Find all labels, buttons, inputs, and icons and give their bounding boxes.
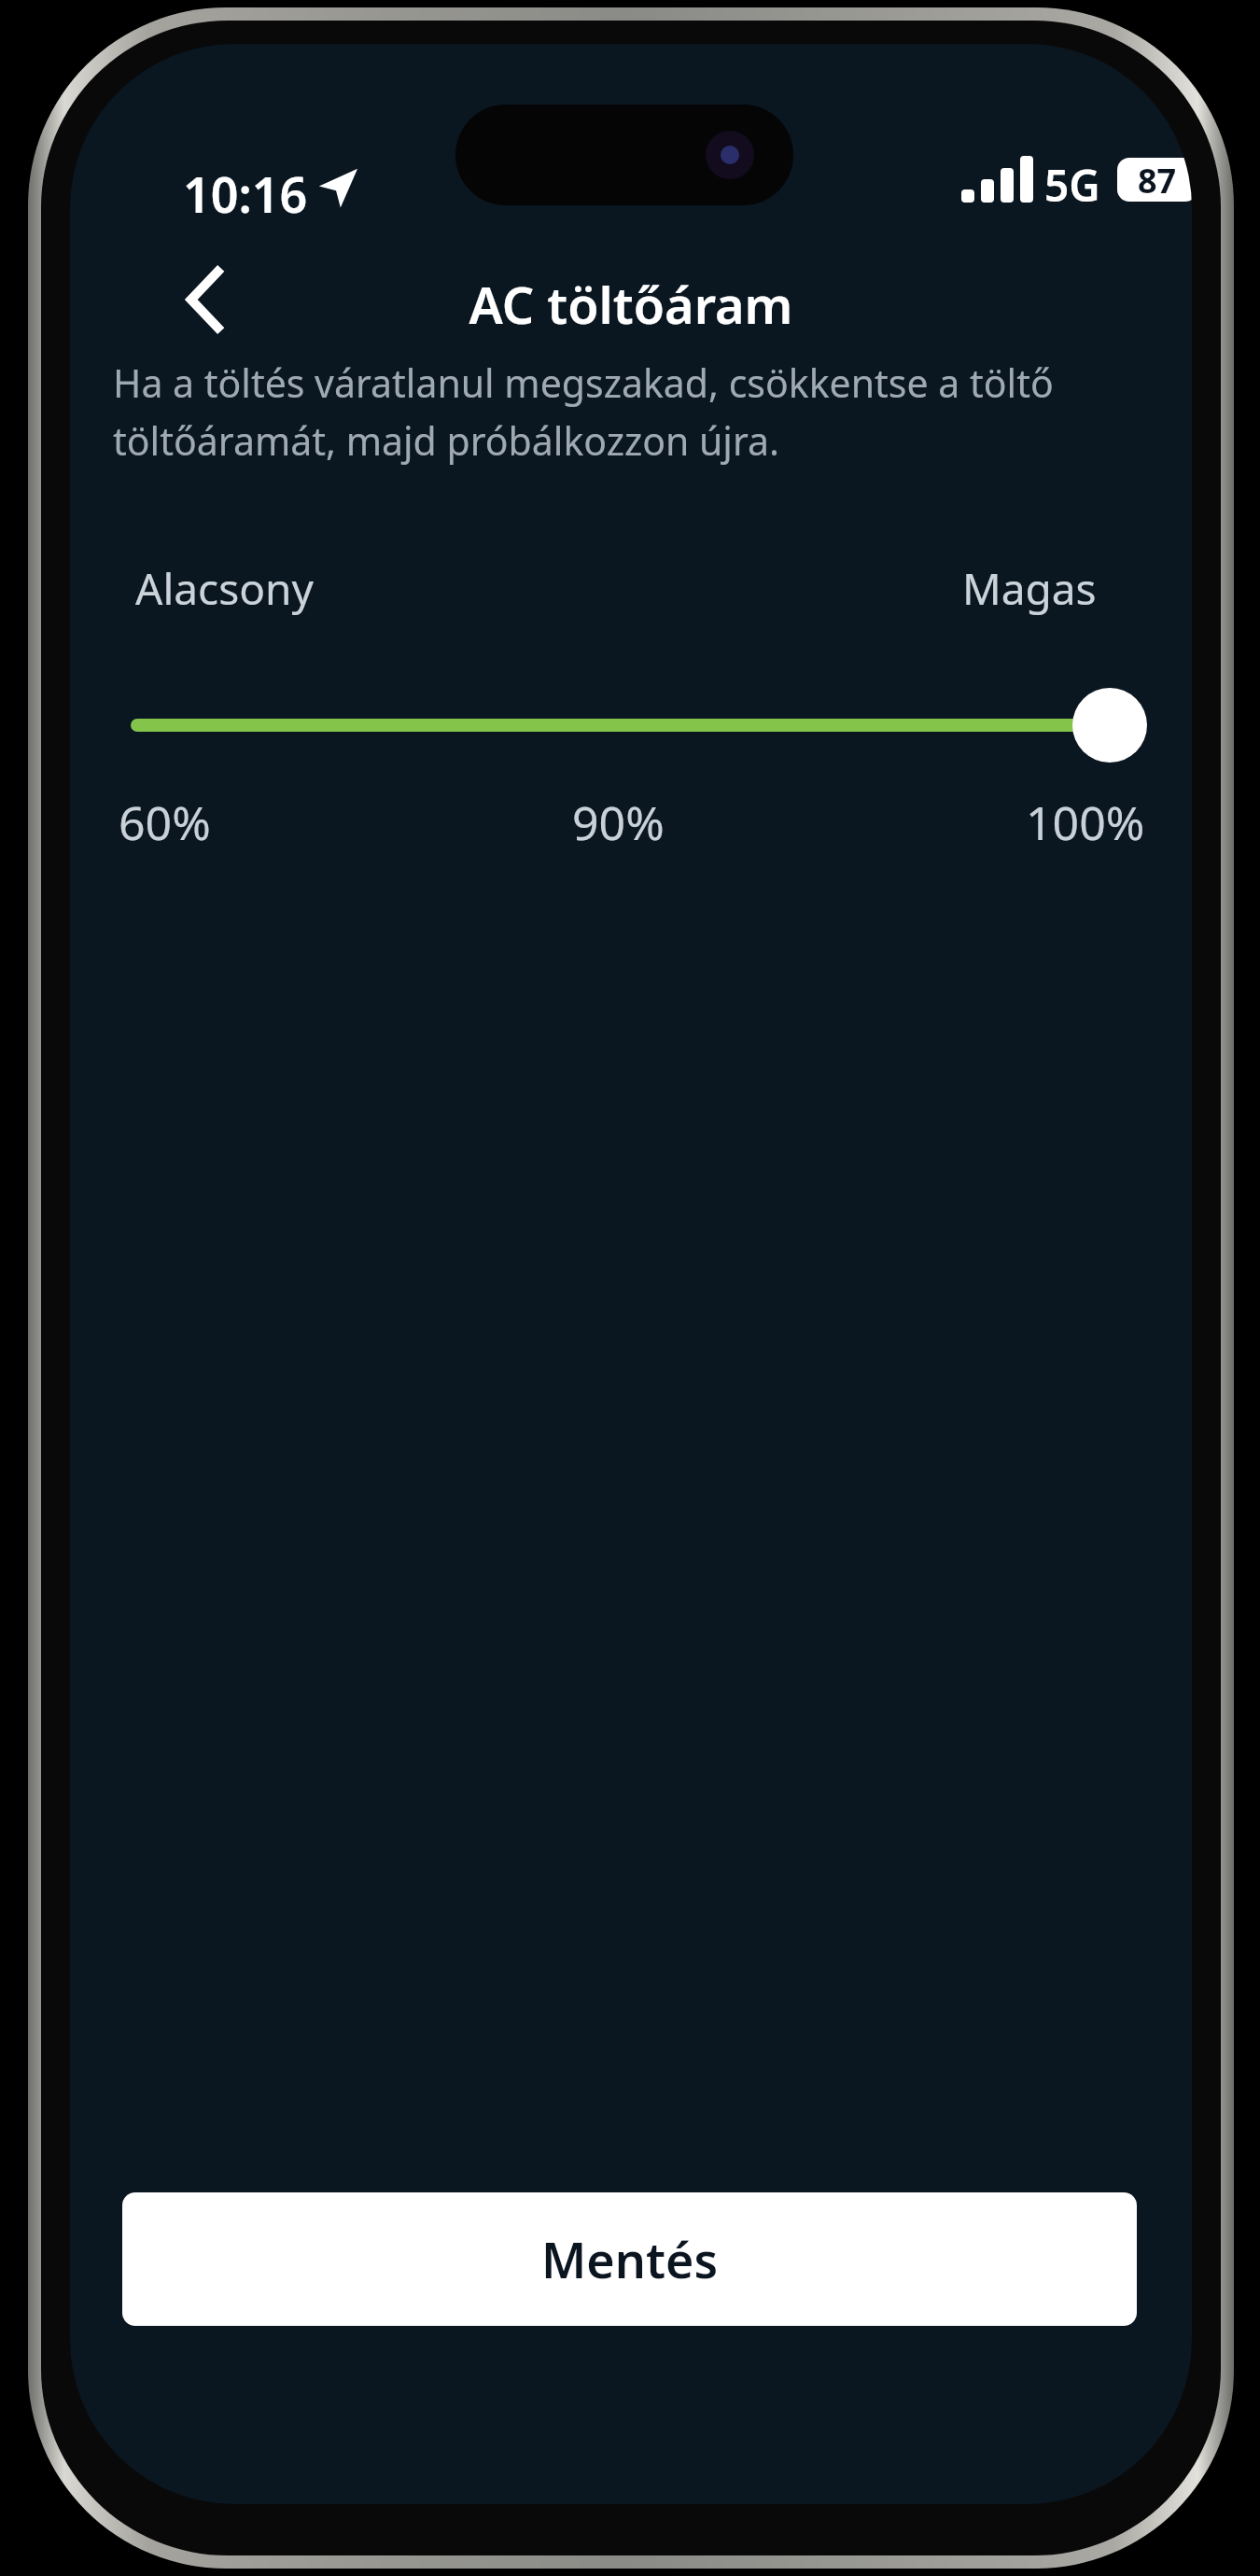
staticText: 10:16 (183, 161, 308, 227)
staticText: AC töltőáram (70, 270, 1192, 339)
staticText: Alacsony (135, 559, 314, 618)
staticText: 100% (1026, 791, 1145, 854)
staticText: Magas (962, 559, 1097, 618)
staticText: Ha a töltés váratlanul megszakad, csökke… (113, 357, 1107, 467)
staticText: Mentés (541, 2226, 719, 2292)
staticText: 90% (572, 791, 665, 854)
staticText: 60% (119, 791, 211, 854)
button[interactable]: Back (152, 247, 257, 352)
staticText: 87 (1138, 158, 1177, 202)
button[interactable]: Charging current slider (119, 674, 1145, 777)
staticText: 5G (1044, 156, 1100, 215)
button[interactable]: Mentés (122, 2192, 1137, 2326)
